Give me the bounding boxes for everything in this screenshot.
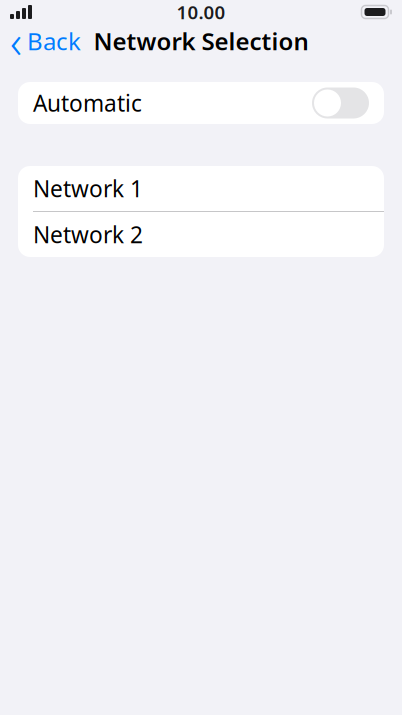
- button[interactable]: Network 1: [18, 166, 384, 211]
- staticText: Network 1: [33, 173, 143, 203]
- button[interactable]: ‹: [0, 7, 91, 75]
- staticText: Automatic: [33, 88, 142, 118]
- button[interactable]: Automatic: [312, 87, 369, 118]
- staticText: ‹: [10, 11, 22, 71]
- staticText: Network 2: [33, 219, 143, 249]
- button[interactable]: Network 2: [18, 212, 384, 257]
- staticText: Back: [27, 25, 81, 57]
- staticText: 10.00: [176, 0, 225, 24]
- staticText: Network Selection: [93, 25, 308, 57]
